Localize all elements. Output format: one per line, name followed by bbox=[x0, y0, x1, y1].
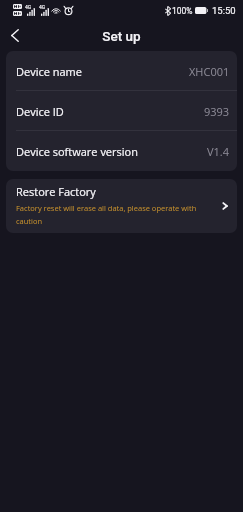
other: Open restore factory bbox=[219, 200, 231, 212]
staticText: Restore Factory bbox=[16, 184, 96, 199]
button[interactable]: Device name bbox=[6, 51, 237, 91]
staticText: Device ID bbox=[16, 104, 64, 119]
button[interactable]: Device software version bbox=[6, 131, 237, 171]
staticText: XHC001 bbox=[189, 64, 230, 79]
staticText: 15:50 bbox=[212, 5, 236, 16]
staticText: 100% bbox=[172, 6, 193, 16]
button[interactable]: Restore Factory bbox=[6, 179, 237, 233]
button[interactable]: Back bbox=[0, 20, 30, 51]
staticText: 9393 bbox=[204, 104, 230, 119]
staticText: V1.4 bbox=[207, 144, 230, 159]
staticText: Device software version bbox=[16, 144, 138, 159]
staticText: Device name bbox=[16, 64, 82, 79]
staticText: 4G bbox=[39, 4, 46, 10]
button[interactable]: Device ID bbox=[6, 91, 237, 131]
staticText: 4G bbox=[25, 4, 32, 10]
staticText: Set up bbox=[102, 28, 141, 44]
staticText: Factory reset will erase all data, pleas… bbox=[16, 203, 207, 226]
